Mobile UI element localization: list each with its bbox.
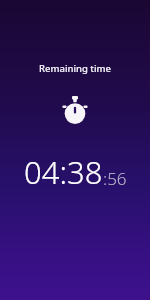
staticText: 04:38: [24, 151, 103, 193]
staticText: :56: [103, 167, 127, 193]
button[interactable]: Timer: [60, 95, 90, 125]
staticText: Remaining time: [39, 62, 111, 75]
